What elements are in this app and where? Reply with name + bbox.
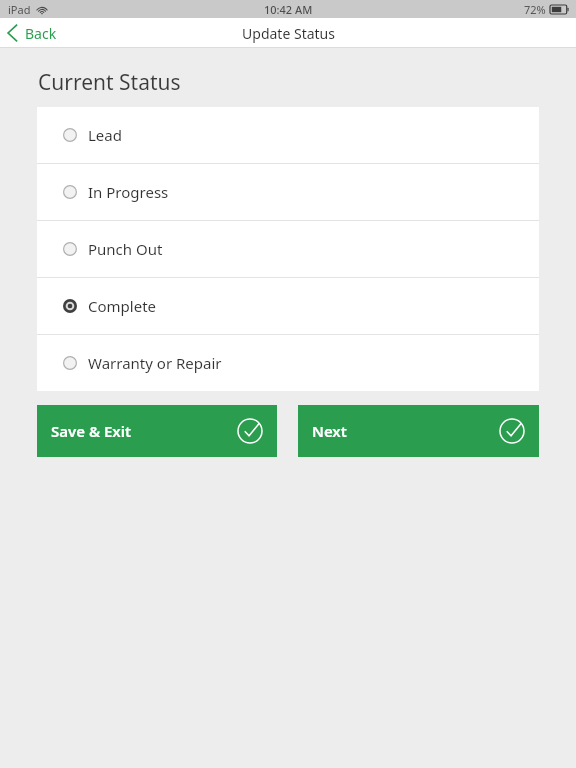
staticText: Save & Exit [51,421,132,441]
button[interactable]: In Progress [37,164,539,220]
button[interactable]: Next [298,405,539,457]
other: Save & Exit [237,418,263,444]
staticText: 10:42 AM [264,2,313,17]
button[interactable]: Warranty or Repair [37,335,539,391]
button[interactable]: Punch Out [37,221,539,277]
other: Next [499,418,525,444]
staticText: Lead [88,125,122,145]
button[interactable]: Back [0,19,69,47]
staticText: Next [312,421,347,441]
staticText: iPad [8,2,31,17]
button[interactable]: Lead [37,107,539,163]
staticText: Back [25,24,57,43]
staticText: 72% [524,2,546,17]
staticText: Complete [88,296,157,316]
button[interactable]: Complete [37,278,539,334]
staticText: Update Status [242,24,335,43]
staticText: Current Status [38,68,181,97]
button[interactable]: Save & Exit [37,405,277,457]
staticText: Warranty or Repair [88,353,222,373]
staticText: In Progress [88,182,169,202]
staticText: Punch Out [88,239,163,259]
